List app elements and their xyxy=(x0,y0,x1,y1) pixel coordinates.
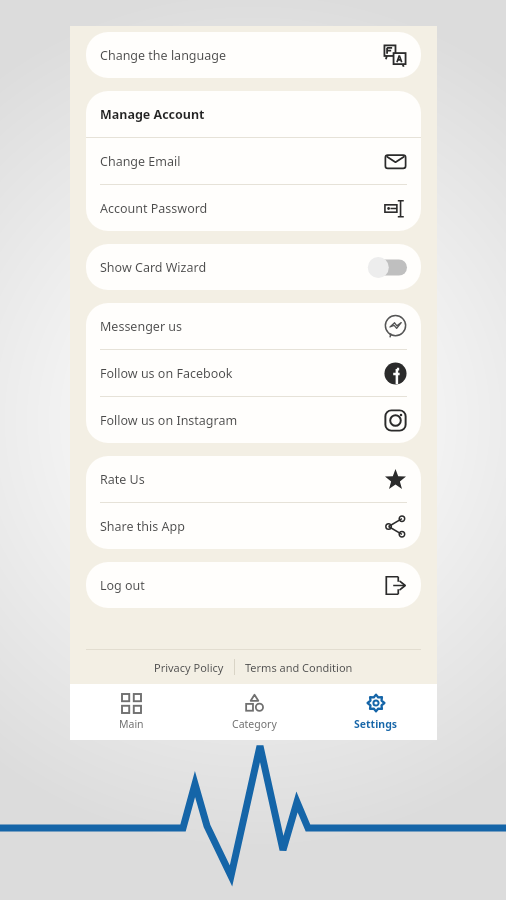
staticText: Manage Account xyxy=(100,106,205,123)
other: Follow us on Facebook xyxy=(384,362,407,385)
button[interactable]: Follow us on Instagram xyxy=(86,397,421,443)
button[interactable]: Show Card Wizard xyxy=(86,244,421,290)
other: Rate Us xyxy=(384,468,407,491)
button[interactable]: Follow us on Facebook xyxy=(86,350,421,396)
button[interactable]: Show Card Wizard toggle xyxy=(367,257,407,278)
staticText: Change the language xyxy=(100,47,227,64)
other: Log out xyxy=(384,574,407,597)
other: Messenger us xyxy=(384,315,407,338)
button[interactable]: Terms and Condition xyxy=(235,660,363,675)
button[interactable]: Settings xyxy=(315,684,437,740)
staticText: Main xyxy=(119,717,144,731)
button[interactable]: Rate Us xyxy=(86,456,421,502)
other: Change Email xyxy=(384,150,407,173)
button[interactable]: Share this App xyxy=(86,503,421,549)
staticText: Follow us on Instagram xyxy=(100,412,238,429)
staticText: Follow us on Facebook xyxy=(100,365,233,382)
staticText: Terms and Condition xyxy=(245,660,353,675)
button[interactable]: Main xyxy=(70,684,193,740)
button[interactable]: Messenger us xyxy=(86,303,421,349)
other: Follow us on Instagram xyxy=(384,409,407,432)
button[interactable]: Manage Account xyxy=(86,91,421,137)
staticText: Share this App xyxy=(100,518,185,535)
staticText: Category xyxy=(232,717,277,731)
staticText: Messenger us xyxy=(100,318,183,335)
button[interactable]: Category xyxy=(193,684,315,740)
button[interactable]: Account Password xyxy=(86,185,421,231)
staticText: Change Email xyxy=(100,153,181,170)
button[interactable]: Change the language xyxy=(86,32,421,78)
staticText: Show Card Wizard xyxy=(100,259,207,276)
staticText: Settings xyxy=(354,717,398,731)
button[interactable]: Privacy Policy xyxy=(144,660,234,675)
staticText: Privacy Policy xyxy=(154,660,224,675)
staticText: Rate Us xyxy=(100,471,145,488)
staticText: Account Password xyxy=(100,200,208,217)
button[interactable]: Change Email xyxy=(86,138,421,184)
other: Share this App xyxy=(384,515,407,538)
other: Change the language xyxy=(383,43,407,67)
button[interactable]: Log out xyxy=(86,562,421,608)
other: Account Password xyxy=(384,197,407,220)
staticText: Log out xyxy=(100,577,145,594)
